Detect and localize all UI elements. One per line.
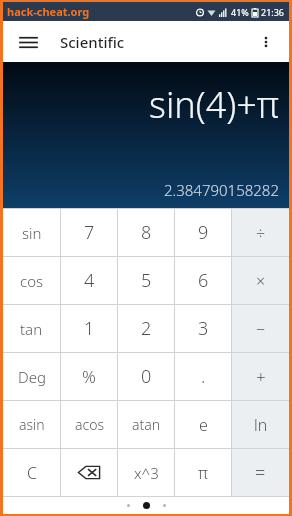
button[interactable]: +: [232, 353, 289, 400]
staticText: 2.384790158282: [163, 180, 279, 200]
staticText: 7: [84, 220, 95, 245]
staticText: ÷: [256, 222, 266, 244]
button[interactable]: 2: [118, 305, 174, 352]
staticText: Scientific: [60, 32, 125, 52]
button[interactable]: ×: [232, 257, 289, 304]
staticText: 8: [141, 220, 152, 245]
button[interactable]: 4: [61, 257, 117, 304]
button[interactable]: ln: [232, 401, 289, 448]
staticText: =: [255, 460, 266, 485]
button[interactable]: Deg: [3, 353, 60, 400]
staticText: Deg: [18, 367, 46, 387]
button[interactable]: cos: [3, 257, 60, 304]
button[interactable]: 5: [118, 257, 174, 304]
staticText: −: [256, 318, 266, 340]
button[interactable]: 8: [118, 209, 174, 256]
button[interactable]: 6: [175, 257, 231, 304]
button[interactable]: 0: [118, 353, 174, 400]
staticText: hack-cheat.org: [7, 4, 90, 19]
staticText: ×: [256, 270, 266, 292]
staticText: asin: [19, 415, 45, 434]
button[interactable]: =: [232, 449, 289, 496]
staticText: acos: [75, 415, 104, 434]
button[interactable]: Open navigation menu: [11, 25, 45, 59]
staticText: 1: [84, 316, 95, 341]
button[interactable]: x^3: [118, 449, 174, 496]
button[interactable]: e: [175, 401, 231, 448]
staticText: .: [201, 364, 206, 389]
button[interactable]: atan: [118, 401, 174, 448]
button[interactable]: 9: [175, 209, 231, 256]
staticText: +: [256, 365, 266, 388]
staticText: cos: [20, 271, 44, 291]
button[interactable]: asin: [3, 401, 60, 448]
staticText: atan: [132, 415, 161, 434]
staticText: π: [198, 462, 208, 484]
staticText: tan: [20, 319, 43, 339]
staticText: 21:36: [261, 6, 285, 18]
button[interactable]: ÷: [232, 209, 289, 256]
button[interactable]: %: [61, 353, 117, 400]
staticText: 6: [198, 268, 209, 293]
button[interactable]: C: [3, 449, 60, 496]
staticText: sin(4)+π: [149, 80, 279, 129]
staticText: e: [199, 414, 208, 436]
staticText: x^3: [134, 463, 159, 483]
button[interactable]: −: [232, 305, 289, 352]
staticText: %: [82, 365, 96, 388]
staticText: 4: [84, 268, 95, 293]
button[interactable]: π: [175, 449, 231, 496]
staticText: sin: [22, 223, 42, 243]
staticText: 3: [198, 316, 209, 341]
staticText: 5: [141, 268, 152, 293]
staticText: C: [27, 462, 37, 484]
staticText: ln: [254, 414, 268, 436]
button[interactable]: acos: [61, 401, 117, 448]
button[interactable]: tan: [3, 305, 60, 352]
staticText: 41%: [231, 6, 249, 18]
button[interactable]: 1: [61, 305, 117, 352]
button[interactable]: Backspace: [61, 449, 117, 496]
button[interactable]: 3: [175, 305, 231, 352]
button[interactable]: 7: [61, 209, 117, 256]
button[interactable]: .: [175, 353, 231, 400]
button[interactable]: sin: [3, 209, 60, 256]
staticText: 2: [141, 316, 152, 341]
staticText: 0: [141, 364, 152, 389]
staticText: 9: [198, 220, 209, 245]
button[interactable]: More options: [249, 25, 283, 59]
